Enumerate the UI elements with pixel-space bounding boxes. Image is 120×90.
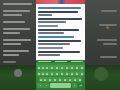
button[interactable]: Period bbox=[72, 83, 77, 88]
button[interactable]: Symbols bbox=[37, 83, 44, 88]
button[interactable]: Key bbox=[45, 65, 49, 70]
button[interactable]: Key bbox=[72, 77, 77, 82]
button[interactable]: Key bbox=[64, 65, 69, 70]
button[interactable]: Enter bbox=[78, 83, 83, 88]
button[interactable]: Key bbox=[45, 71, 49, 76]
button[interactable]: Key bbox=[41, 71, 45, 76]
button[interactable]: Key bbox=[59, 71, 64, 76]
button[interactable]: Key bbox=[54, 71, 59, 76]
button[interactable]: Key bbox=[64, 71, 69, 76]
button[interactable]: Key bbox=[47, 77, 52, 82]
button[interactable]: Suggestion bbox=[71, 61, 83, 62]
button[interactable]: Key bbox=[74, 71, 79, 76]
button[interactable]: Suggestion bbox=[55, 61, 67, 62]
button[interactable]: Key bbox=[37, 65, 41, 70]
button[interactable] bbox=[38, 39, 83, 46]
button[interactable]: Key bbox=[49, 71, 54, 76]
button[interactable] bbox=[38, 24, 83, 28]
button[interactable] bbox=[38, 10, 83, 17]
button[interactable]: Key bbox=[39, 77, 43, 82]
button[interactable] bbox=[38, 28, 83, 35]
button[interactable]: Key bbox=[49, 65, 54, 70]
button[interactable] bbox=[38, 6, 83, 10]
button[interactable]: Suggestion bbox=[38, 61, 51, 62]
button[interactable]: Key bbox=[79, 71, 84, 76]
button[interactable]: Key bbox=[62, 77, 67, 82]
button[interactable] bbox=[36, 0, 85, 4]
button[interactable]: Key bbox=[67, 77, 72, 82]
button[interactable]: Compose bbox=[14, 69, 22, 77]
button[interactable]: Key bbox=[77, 77, 82, 82]
button[interactable]: Key bbox=[59, 65, 64, 70]
button[interactable]: Key bbox=[41, 65, 45, 70]
button[interactable]: Key bbox=[54, 65, 59, 70]
button[interactable]: Key bbox=[37, 71, 41, 76]
button[interactable] bbox=[38, 46, 83, 50]
button[interactable]: Key bbox=[74, 65, 79, 70]
button[interactable]: Key bbox=[79, 65, 84, 70]
button[interactable] bbox=[38, 35, 83, 39]
button[interactable] bbox=[38, 50, 83, 57]
button[interactable]: Space bbox=[50, 83, 71, 88]
button[interactable]: Key bbox=[43, 77, 47, 82]
button[interactable]: Key bbox=[57, 77, 62, 82]
button[interactable]: Key bbox=[69, 71, 74, 76]
button[interactable]: Comma bbox=[44, 83, 49, 88]
button[interactable]: Key bbox=[69, 65, 74, 70]
button[interactable] bbox=[38, 17, 83, 24]
button[interactable]: Key bbox=[52, 77, 57, 82]
